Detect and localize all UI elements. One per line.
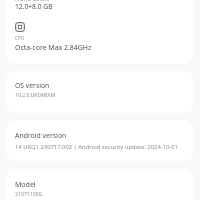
- staticText: Model: [15, 180, 36, 190]
- button[interactable]: Android version: [6, 120, 193, 161]
- staticText: 10.2.0.UKDMIXM: [15, 92, 56, 99]
- button[interactable]: RAM (LPDDR5X): [6, 0, 193, 64]
- other: CPU: [15, 22, 25, 32]
- button[interactable]: Model: [6, 169, 193, 200]
- staticText: Octa-core Max 2.84GHz: [15, 43, 92, 52]
- staticText: RAM (LPDDR5X): [15, 0, 49, 2]
- staticText: CPU: [15, 35, 25, 41]
- staticText: 2107113SG: [15, 190, 43, 197]
- staticText: 12.0+8.0 GB: [15, 2, 53, 11]
- button[interactable]: OS version: [6, 71, 193, 113]
- staticText: 14 UKQ1.230717.002 | Android security up…: [15, 143, 178, 151]
- staticText: Android version: [15, 131, 67, 140]
- staticText: OS version: [15, 81, 50, 90]
